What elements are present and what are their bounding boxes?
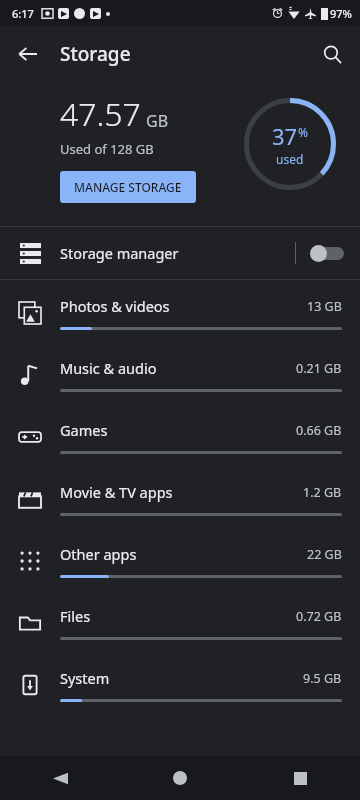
- button[interactable]: Recent apps: [240, 756, 360, 800]
- button[interactable]: Home: [120, 756, 240, 800]
- staticText: 1.2 GB: [303, 484, 342, 501]
- button[interactable]: Files: [0, 592, 360, 654]
- button[interactable]: Music & audio: [0, 344, 360, 406]
- staticText: 9.5 GB: [303, 670, 342, 687]
- button[interactable]: MANAGE STORAGE: [60, 171, 196, 203]
- staticText: Photos & videos: [60, 296, 307, 316]
- staticText: 0.21 GB: [296, 360, 342, 377]
- staticText: 47.57: [60, 92, 141, 136]
- staticText: Used of 128 GB: [60, 140, 154, 158]
- staticText: Other apps: [60, 544, 307, 564]
- staticText: Storage: [60, 41, 131, 67]
- button[interactable]: Photos & videos: [0, 282, 360, 344]
- button[interactable]: Search: [312, 34, 352, 74]
- button[interactable]: Movie & TV apps: [0, 468, 360, 530]
- button[interactable]: Back: [8, 34, 48, 74]
- button[interactable]: Storage manager toggle: [310, 238, 346, 268]
- button[interactable]: System: [0, 654, 360, 716]
- staticText: Storage manager: [60, 243, 295, 263]
- staticText: 22 GB: [307, 546, 342, 563]
- staticText: %: [298, 124, 308, 140]
- staticText: MANAGE STORAGE: [74, 179, 182, 195]
- button[interactable]: Storage manager: [0, 227, 360, 279]
- staticText: Games: [60, 420, 296, 440]
- staticText: GB: [146, 110, 169, 132]
- staticText: Files: [60, 606, 296, 626]
- staticText: 37: [272, 121, 298, 151]
- staticText: 0.66 GB: [296, 422, 342, 439]
- staticText: 6:17: [12, 6, 34, 21]
- button[interactable]: Back: [0, 756, 120, 800]
- button[interactable]: Games: [0, 406, 360, 468]
- staticText: 13 GB: [307, 298, 342, 315]
- button[interactable]: Other apps: [0, 530, 360, 592]
- staticText: System: [60, 668, 303, 688]
- staticText: 97%: [330, 6, 352, 21]
- staticText: 0.72 GB: [296, 608, 342, 625]
- staticText: Movie & TV apps: [60, 482, 303, 502]
- staticText: used: [276, 151, 304, 167]
- staticText: Music & audio: [60, 358, 296, 378]
